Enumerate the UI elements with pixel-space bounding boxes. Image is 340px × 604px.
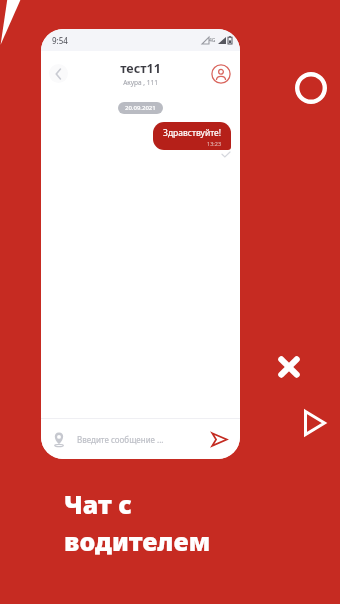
button[interactable]: Profile (211, 64, 231, 84)
staticText: 4G (209, 37, 216, 44)
button[interactable]: Введите сообщение ... (77, 434, 207, 445)
button[interactable]: Attach location (48, 428, 70, 450)
button[interactable]: Send (207, 427, 231, 451)
staticText: водителем (64, 524, 211, 558)
button[interactable]: Здравствуйте! (153, 122, 231, 150)
staticText: 9:54 (52, 35, 68, 46)
staticText: Чат с (64, 487, 132, 521)
staticText: 20.09.2021 (125, 104, 156, 112)
button[interactable]: Back (49, 64, 68, 83)
staticText: Здравствуйте! (163, 127, 222, 139)
staticText: тест11 (120, 60, 161, 77)
staticText: Акура , 111 (123, 78, 158, 87)
staticText: 13:23 (207, 140, 222, 147)
